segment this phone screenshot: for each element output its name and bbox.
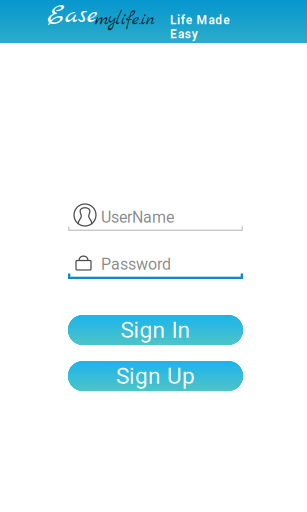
button[interactable]: Sign Up xyxy=(68,361,243,391)
staticText: Password xyxy=(101,255,171,274)
staticText: mylife.in xyxy=(95,8,155,31)
staticText: Sign Up xyxy=(116,363,195,389)
staticText: Life Made Easy xyxy=(170,13,262,27)
staticText: Sign In xyxy=(120,317,190,343)
button[interactable]: Sign In xyxy=(68,315,243,345)
staticText: Ease xyxy=(47,0,97,32)
staticText: UserName xyxy=(101,208,174,227)
